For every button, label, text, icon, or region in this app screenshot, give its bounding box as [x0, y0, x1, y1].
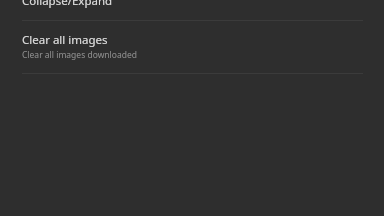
- staticText: Collapse/Expand: [22, 0, 113, 9]
- button[interactable]: Collapse/Expand: [0, 0, 384, 20]
- staticText: Clear all images downloaded: [22, 49, 137, 61]
- staticText: Clear all images: [22, 32, 108, 48]
- button[interactable]: Clear all images: [0, 21, 384, 73]
